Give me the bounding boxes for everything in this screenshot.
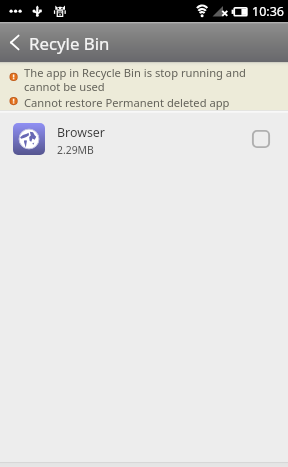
staticText: 2.29MB [57,143,94,157]
staticText: The app in Recycle Bin is stop running a… [24,65,246,94]
button[interactable]: Bottom action bar [0,462,288,467]
button[interactable]: Select Browser [249,127,273,151]
staticText: Browser [57,124,105,141]
staticText: 10:36 [252,3,284,20]
staticText: Recyle Bin [29,32,110,55]
button[interactable]: Back [0,22,29,62]
staticText: Cannot restore Permanent deleted app [24,95,230,110]
button[interactable]: Browser [0,113,288,165]
